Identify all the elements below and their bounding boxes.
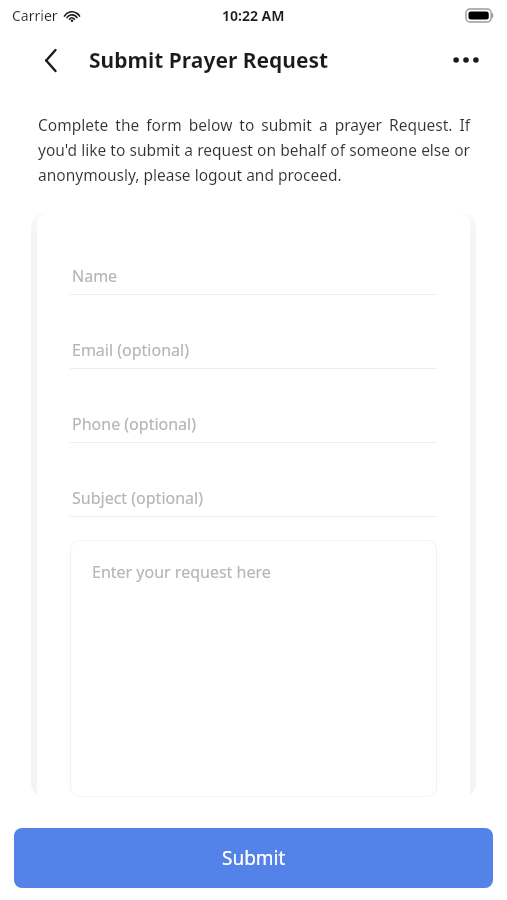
button[interactable]: Submit bbox=[14, 828, 493, 888]
button[interactable]: Email (optional) bbox=[70, 313, 437, 387]
staticText: Complete the form below to submit a pray… bbox=[38, 114, 470, 185]
staticText: Submit Prayer Request bbox=[89, 46, 329, 75]
button[interactable]: Enter your request here bbox=[70, 540, 437, 797]
button[interactable]: Name bbox=[70, 239, 437, 313]
button[interactable]: More options bbox=[444, 38, 488, 82]
staticText: Email (optional) bbox=[72, 339, 189, 361]
staticText: Carrier bbox=[12, 6, 58, 25]
staticText: Subject (optional) bbox=[72, 487, 203, 509]
button[interactable]: Subject (optional) bbox=[70, 461, 437, 535]
staticText: Name bbox=[72, 265, 118, 287]
staticText: Phone (optional) bbox=[72, 413, 197, 435]
staticText: 10:22 AM bbox=[222, 6, 285, 25]
staticText: Submit bbox=[222, 845, 286, 871]
button[interactable]: Phone (optional) bbox=[70, 387, 437, 461]
button[interactable]: Back bbox=[30, 39, 72, 81]
staticText: Enter your request here bbox=[92, 561, 271, 583]
